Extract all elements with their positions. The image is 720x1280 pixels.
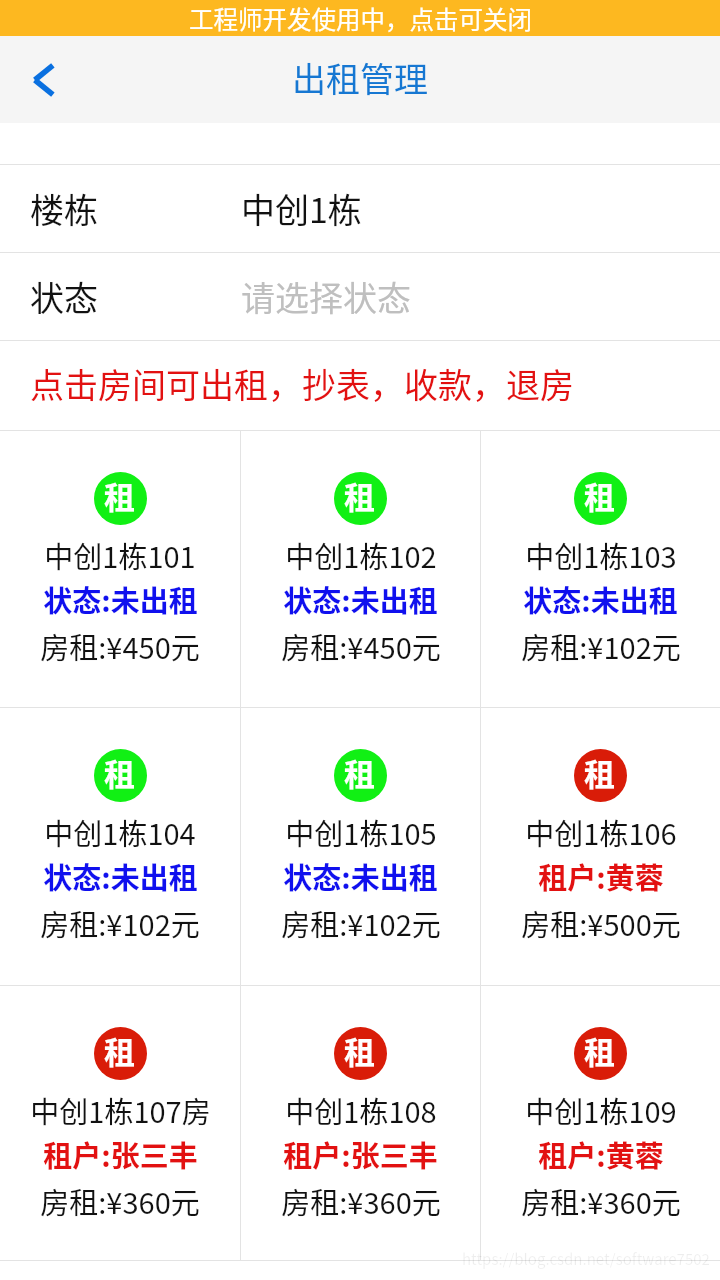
staticText: 点击房间可出租，抄表，收款，退房 — [30, 359, 574, 408]
staticText: 状态:未出租 — [523, 578, 678, 620]
staticText: 状态:未出租 — [43, 855, 198, 897]
staticText: 状态:未出租 — [283, 578, 438, 620]
staticText: 状态:未出租 — [283, 855, 438, 897]
staticText: 请选择状态 — [241, 272, 411, 321]
staticText: 房租:¥102元 — [40, 902, 200, 944]
staticText: 中创1栋107房 — [30, 1089, 211, 1131]
staticText: 中创1栋109 — [525, 1089, 677, 1131]
staticText: https://blog.csdn.net/software7502 — [462, 1248, 710, 1270]
button[interactable]: 租 — [0, 431, 240, 707]
staticText: 中创1栋101 — [44, 534, 196, 576]
staticText: 中创1栋104 — [44, 811, 196, 853]
button[interactable]: 状态 — [0, 253, 720, 340]
staticText: 租 — [104, 473, 135, 518]
staticText: 租户:张三丰 — [43, 1133, 198, 1175]
staticText: 房租:¥500元 — [521, 902, 681, 944]
staticText: 状态 — [30, 272, 98, 321]
staticText: 租户:黄蓉 — [538, 1133, 664, 1175]
staticText: 房租:¥102元 — [521, 625, 681, 667]
staticText: 租户:张三丰 — [283, 1133, 438, 1175]
button[interactable]: 租 — [241, 431, 480, 707]
staticText: 房租:¥360元 — [281, 1180, 441, 1222]
staticText: 工程师开发使用中，点击可关闭 — [189, 1, 532, 36]
staticText: 房租:¥360元 — [40, 1180, 200, 1222]
staticText: 租 — [584, 1028, 615, 1073]
staticText: 租 — [344, 750, 375, 795]
staticText: 中创1栋 — [241, 184, 362, 233]
staticText: 房租:¥450元 — [281, 625, 441, 667]
staticText: 楼栋 — [30, 184, 98, 233]
staticText: 中创1栋105 — [285, 811, 437, 853]
staticText: 中创1栋103 — [525, 534, 677, 576]
button[interactable]: 租 — [481, 986, 720, 1260]
staticText: 租 — [584, 473, 615, 518]
button[interactable]: 租 — [0, 708, 240, 985]
button[interactable]: 租 — [0, 986, 240, 1260]
staticText: 房租:¥450元 — [40, 625, 200, 667]
staticText: 出租管理 — [292, 53, 428, 102]
staticText: 中创1栋102 — [285, 534, 437, 576]
button[interactable]: 楼栋 — [0, 165, 720, 252]
staticText: 房租:¥360元 — [521, 1180, 681, 1222]
staticText: 租 — [584, 750, 615, 795]
staticText: 状态:未出租 — [43, 578, 198, 620]
button[interactable]: 工程师开发使用中，点击可关闭 — [0, 0, 720, 36]
button[interactable]: 租 — [481, 708, 720, 985]
staticText: 中创1栋108 — [285, 1089, 437, 1131]
button[interactable]: 租 — [241, 986, 480, 1260]
staticText: 租 — [104, 1028, 135, 1073]
staticText: 租 — [344, 473, 375, 518]
button[interactable]: 返回 — [0, 37, 86, 123]
button[interactable]: 租 — [481, 431, 720, 707]
staticText: 租 — [344, 1028, 375, 1073]
staticText: 租户:黄蓉 — [538, 855, 664, 897]
button[interactable]: 租 — [241, 708, 480, 985]
staticText: 中创1栋106 — [525, 811, 677, 853]
staticText: 房租:¥102元 — [281, 902, 441, 944]
staticText: 租 — [104, 750, 135, 795]
